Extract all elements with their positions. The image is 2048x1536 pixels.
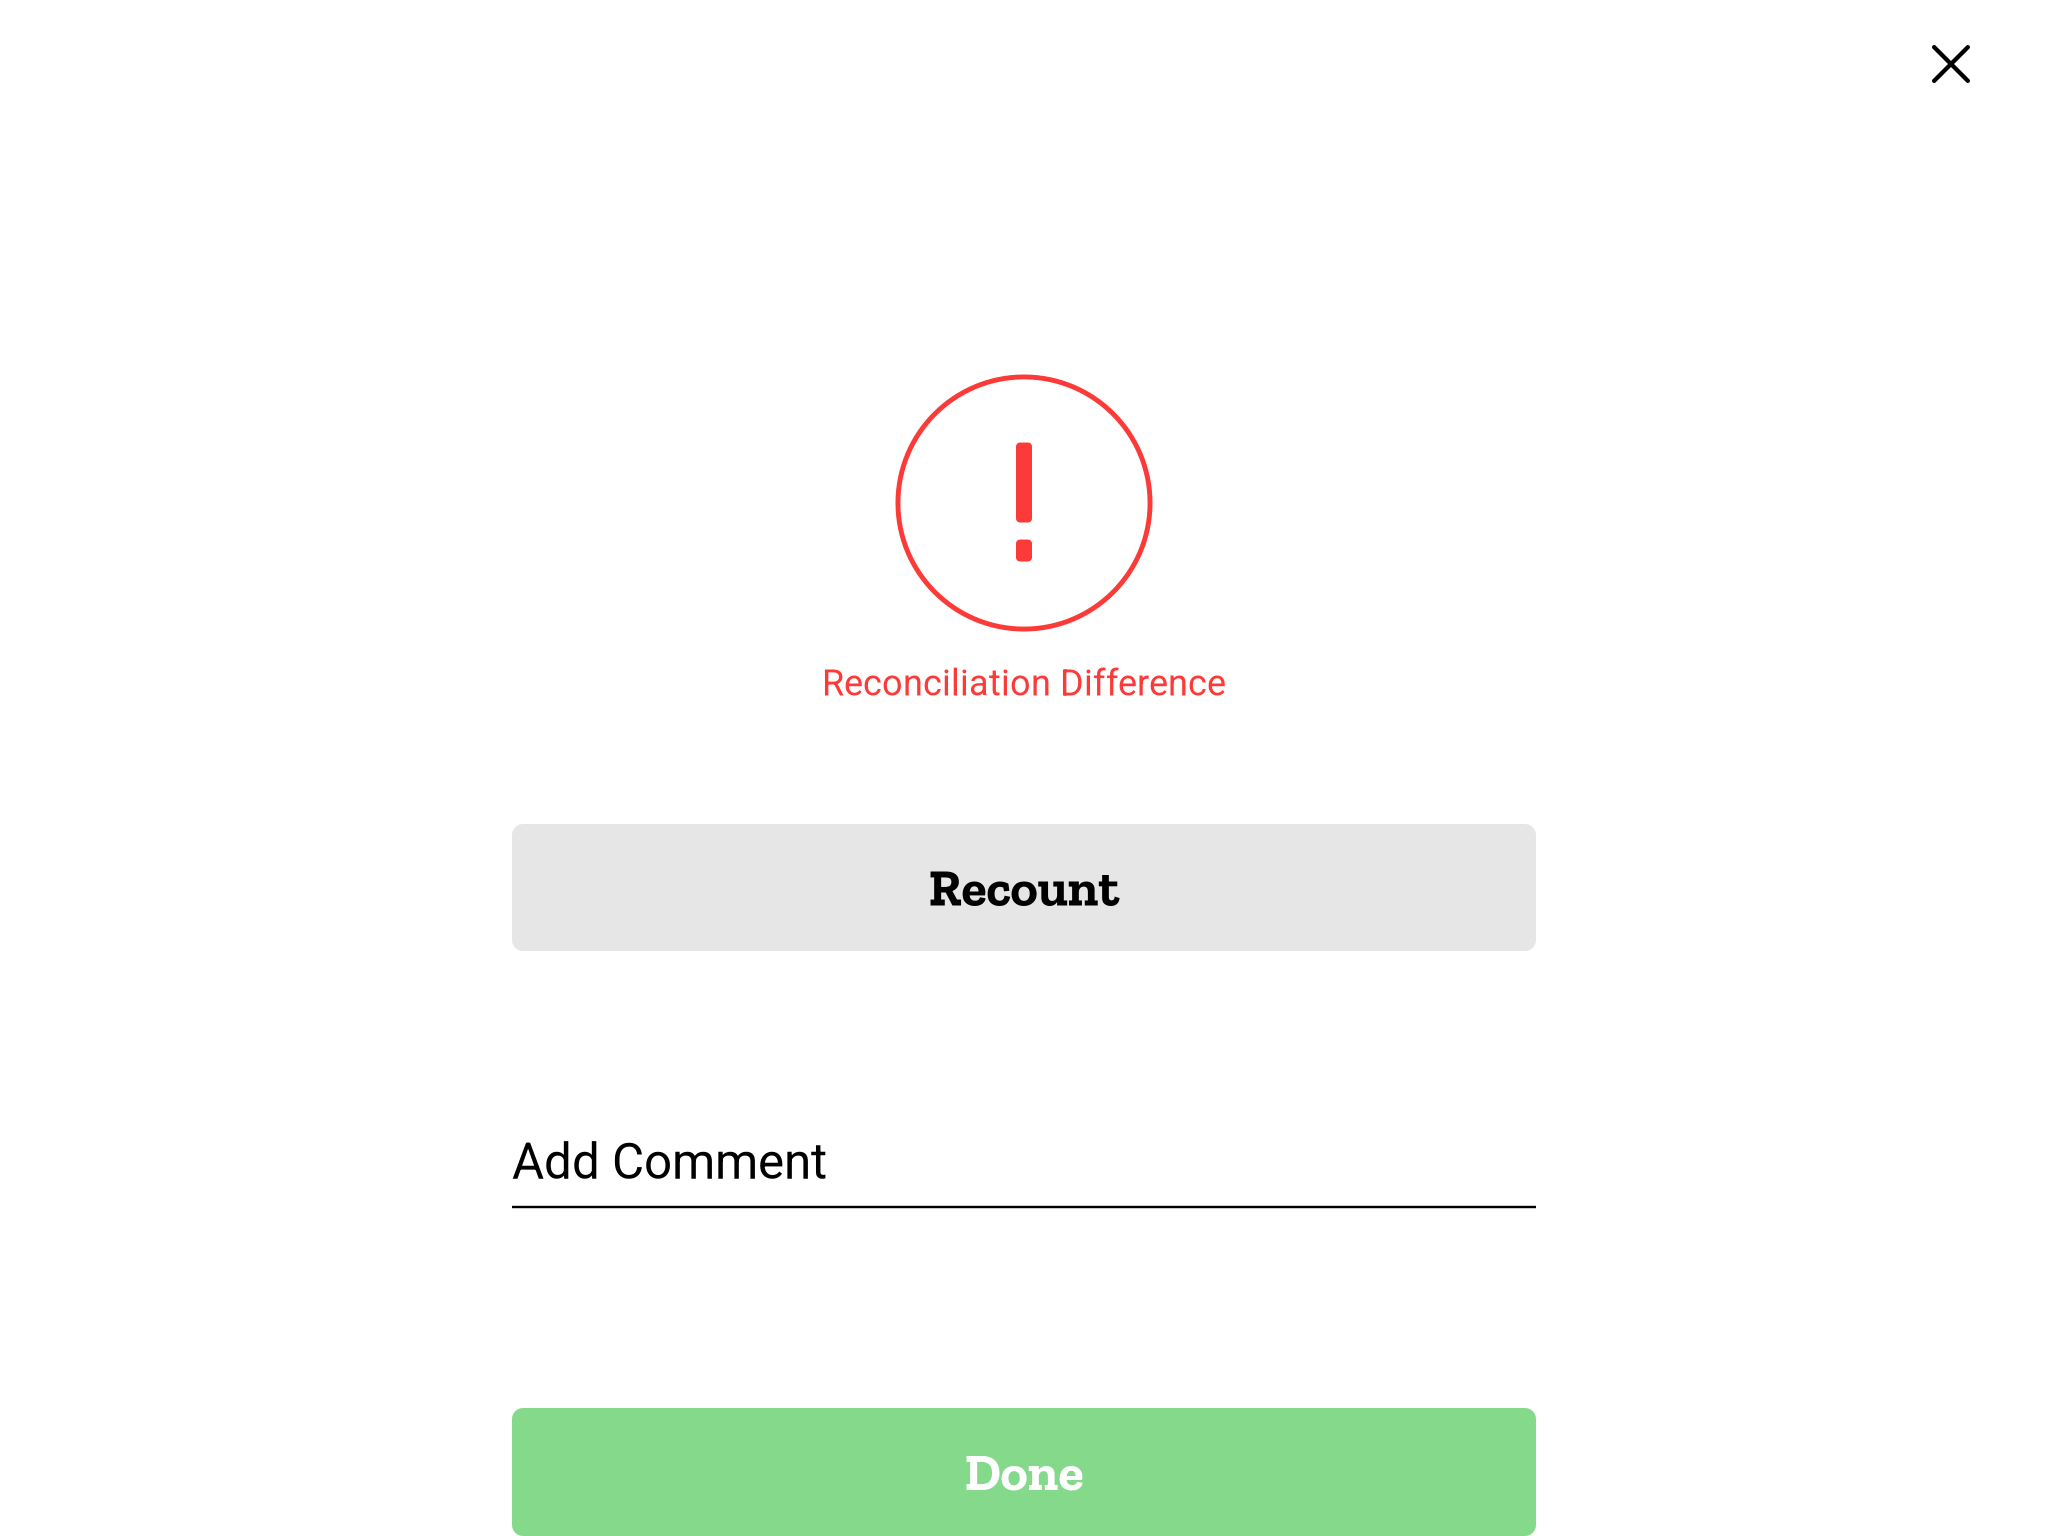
button[interactable]: Add Comment [512, 1133, 1536, 1208]
button[interactable]: Done [512, 1408, 1536, 1536]
staticText: Recount [928, 856, 1119, 919]
button[interactable]: Close [1903, 16, 1999, 112]
staticText: Reconciliation Difference [822, 662, 1226, 704]
button[interactable]: Recount [512, 824, 1536, 951]
staticText: Add Comment [512, 1133, 827, 1191]
staticText: Done [964, 1441, 1083, 1503]
